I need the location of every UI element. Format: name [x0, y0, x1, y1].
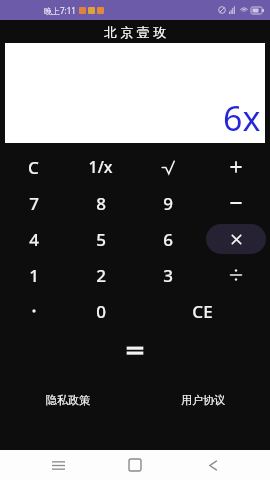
button[interactable]: 5 [67, 221, 134, 257]
staticText: 3 [163, 264, 173, 287]
button[interactable]: CE [135, 293, 270, 329]
button[interactable]: 3 [134, 257, 202, 293]
button[interactable]: 1 [0, 257, 67, 293]
button[interactable]: C [0, 149, 67, 185]
button[interactable]: Equals [108, 335, 162, 365]
staticText: 5 [96, 228, 106, 251]
staticText: 6 [163, 228, 173, 251]
button[interactable]: Home [115, 450, 155, 480]
staticText: 2 [96, 264, 106, 287]
staticText: 1 [29, 264, 39, 287]
staticText: 6x [223, 95, 261, 141]
staticText: 1/x [88, 156, 113, 178]
button[interactable]: 用户协议 [135, 387, 270, 413]
button[interactable]: Decimal point [0, 293, 67, 329]
button[interactable]: Divide [202, 257, 270, 293]
button[interactable]: 1/x [67, 149, 134, 185]
staticText: 0 [96, 300, 106, 323]
button[interactable]: Plus [202, 149, 270, 185]
button[interactable]: 7 [0, 185, 67, 221]
staticText: 用户协议 [181, 393, 225, 407]
button[interactable]: 6 [134, 221, 202, 257]
staticText: C [28, 156, 39, 179]
button[interactable]: 隐私政策 [0, 387, 135, 413]
button[interactable]: Square root [134, 149, 202, 185]
button[interactable]: 2 [67, 257, 134, 293]
button[interactable]: 4 [0, 221, 67, 257]
button[interactable]: Minus [202, 185, 270, 221]
button[interactable]: 0 [67, 293, 135, 329]
staticText: 9 [163, 192, 173, 215]
staticText: 4 [29, 228, 39, 251]
staticText: CE [192, 300, 213, 323]
staticText: 北 京 壹 玫 [104, 23, 167, 41]
staticText: 7 [29, 192, 39, 215]
staticText: 晚上7:11 [44, 5, 76, 16]
staticText: 隐私政策 [46, 393, 90, 407]
button[interactable]: Back [193, 450, 233, 480]
button[interactable]: 9 [134, 185, 202, 221]
button[interactable]: Multiply [206, 224, 266, 254]
staticText: 8 [96, 192, 106, 215]
button[interactable]: 8 [67, 185, 134, 221]
button[interactable]: Recent apps [38, 450, 78, 480]
